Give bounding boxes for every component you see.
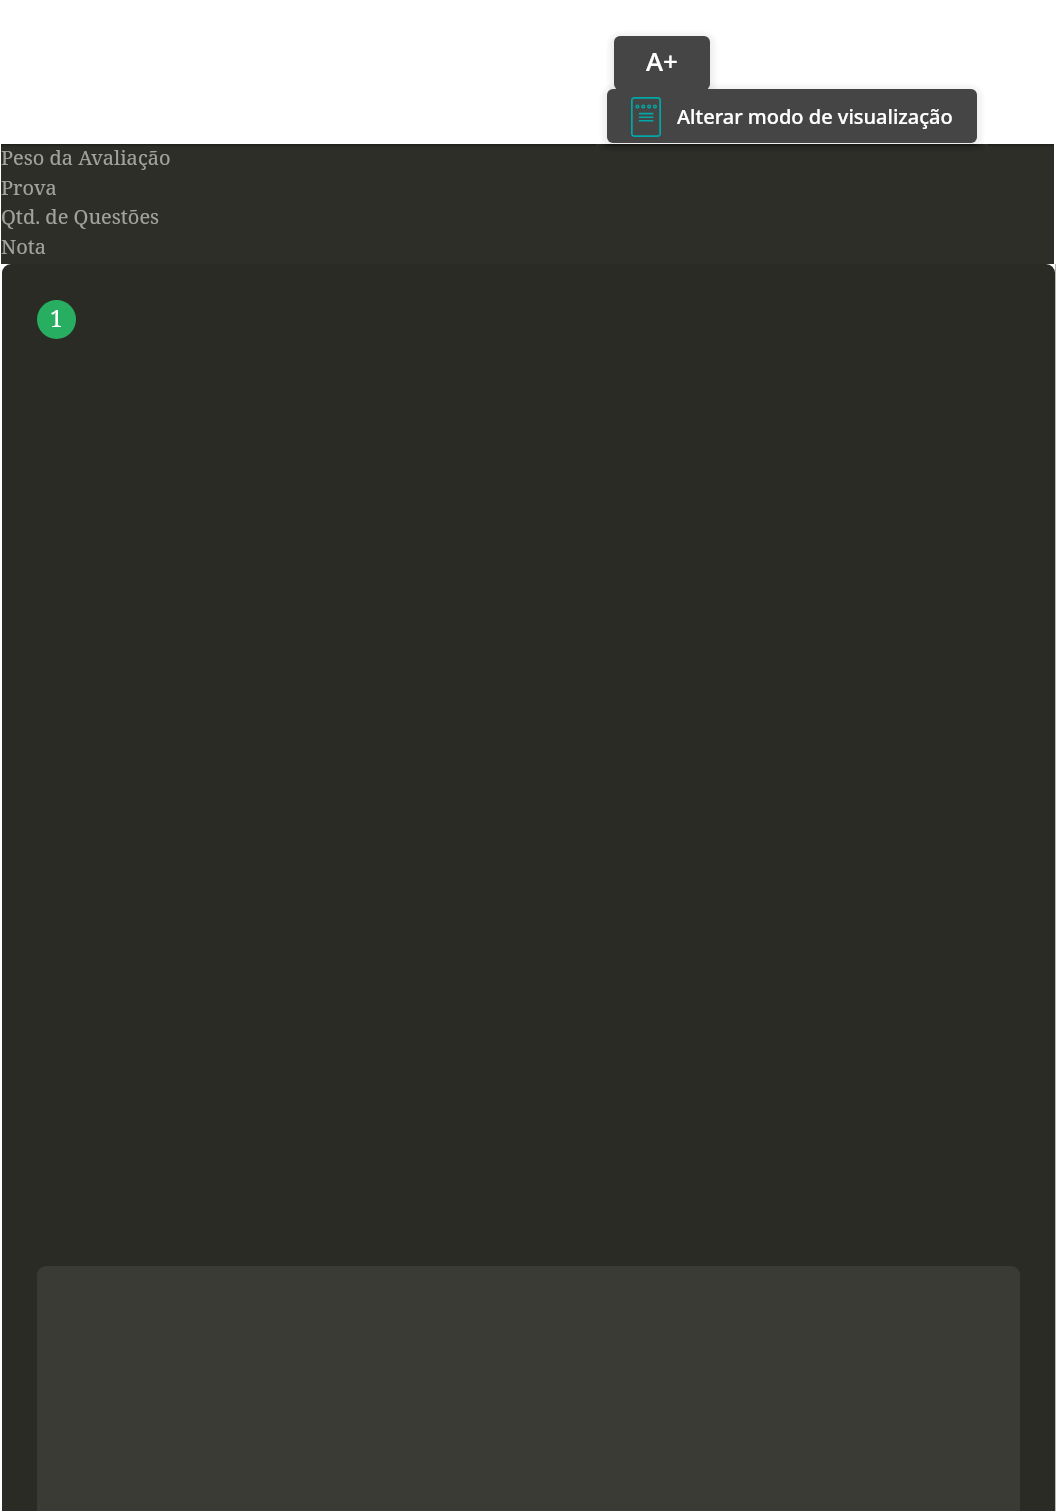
other: Alterar modo de visualização [631, 97, 661, 137]
staticText: 1 [50, 302, 63, 333]
staticText: Nota [1, 233, 47, 260]
staticText: Alterar modo de visualização [677, 103, 953, 130]
staticText: Qtd. de Questões [1, 203, 160, 230]
button[interactable]: Alterar modo de visualização [607, 89, 977, 143]
staticText: A+ [646, 43, 678, 78]
button[interactable]: 1 [37, 300, 76, 339]
staticText: Peso da Avaliação [1, 144, 171, 171]
staticText: Prova [1, 174, 57, 201]
button[interactable]: A+ [614, 36, 710, 90]
